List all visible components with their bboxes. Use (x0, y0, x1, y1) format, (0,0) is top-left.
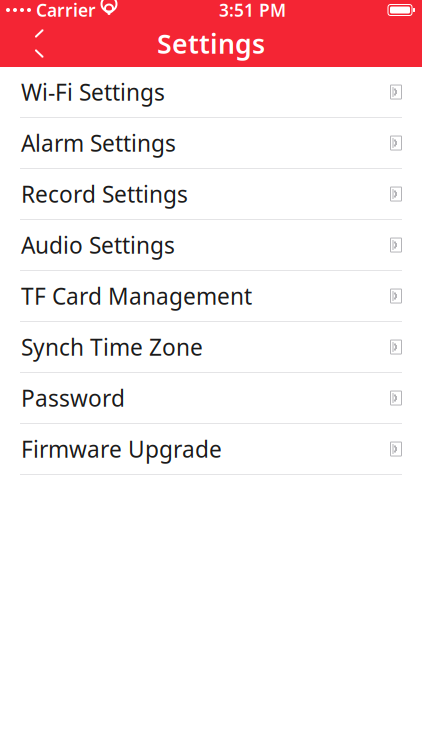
staticText: Audio Settings (21, 230, 175, 260)
staticText: Alarm Settings (21, 128, 176, 158)
button[interactable]: Record Settings (0, 169, 422, 220)
button[interactable]: Password (0, 373, 422, 424)
button[interactable]: TF Card Management (0, 271, 422, 322)
button[interactable]: Back (18, 21, 54, 65)
staticText: Record Settings (21, 179, 188, 209)
staticText: Synch Time Zone (21, 332, 203, 362)
staticText: Wi-Fi Settings (21, 77, 165, 107)
button[interactable]: Audio Settings (0, 220, 422, 271)
staticText: 3:51 PM (219, 0, 286, 21)
button[interactable]: Firmware Upgrade (0, 424, 422, 475)
staticText: TF Card Management (21, 281, 252, 311)
staticText: Firmware Upgrade (21, 434, 222, 464)
button[interactable]: Alarm Settings (0, 118, 422, 169)
staticText: Password (21, 383, 125, 413)
staticText: Carrier (36, 0, 96, 21)
button[interactable]: Synch Time Zone (0, 322, 422, 373)
button[interactable]: Wi-Fi Settings (0, 67, 422, 118)
staticText: Settings (157, 26, 265, 61)
